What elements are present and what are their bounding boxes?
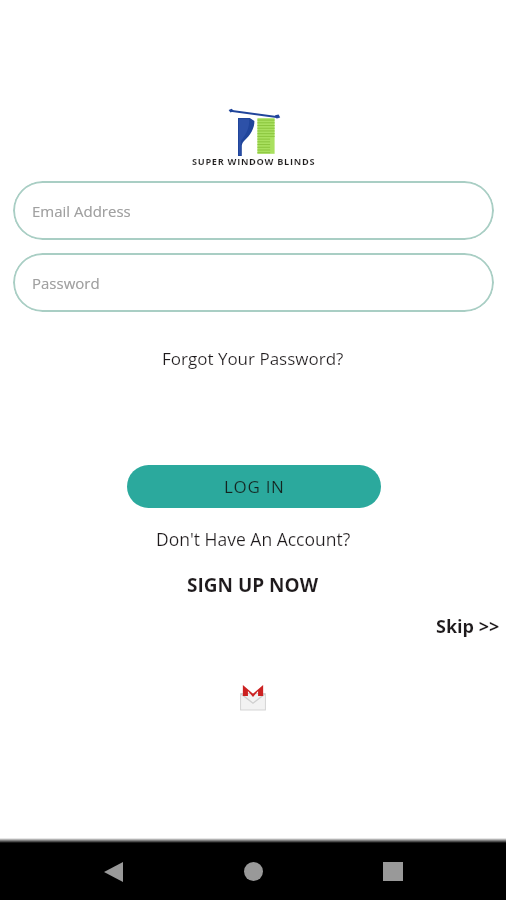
- staticText: LOG IN: [224, 475, 285, 498]
- button[interactable]: Skip >>: [430, 612, 500, 640]
- button[interactable]: Recent apps: [373, 843, 413, 900]
- staticText: SUPER WINDOW BLINDS: [192, 155, 316, 168]
- button[interactable]: Password: [13, 253, 494, 312]
- staticText: Forgot Your Password?: [162, 347, 344, 370]
- button[interactable]: Email Address: [13, 181, 494, 240]
- button[interactable]: Home: [233, 843, 273, 900]
- button[interactable]: Forgot Your Password?: [0, 340, 506, 376]
- button[interactable]: SIGN UP NOW: [0, 570, 506, 600]
- staticText: Skip >>: [436, 614, 500, 639]
- staticText: Email Address: [32, 201, 131, 221]
- staticText: Don't Have An Account?: [156, 527, 351, 551]
- button[interactable]: Sign in with Gmail: [240, 684, 266, 710]
- staticText: SIGN UP NOW: [187, 572, 319, 598]
- button[interactable]: LOG IN: [127, 465, 381, 508]
- staticText: Password: [32, 273, 100, 293]
- button[interactable]: Back: [93, 843, 133, 900]
